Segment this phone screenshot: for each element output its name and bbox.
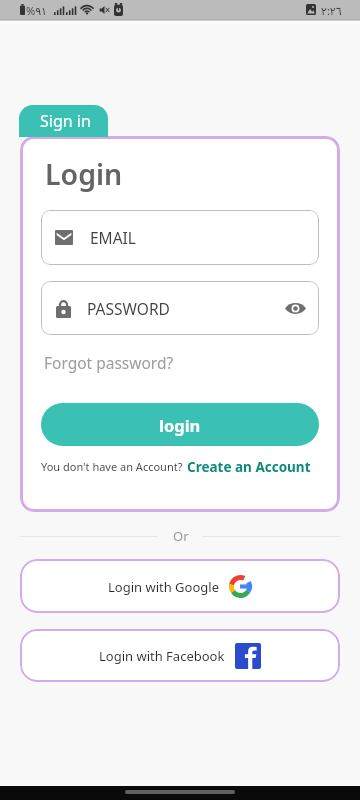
button[interactable]: Show password	[282, 295, 308, 321]
staticText: Login with Facebook	[99, 647, 225, 665]
button[interactable]: Forgot password?	[44, 352, 174, 373]
button[interactable]: Login with Facebook	[20, 629, 340, 682]
staticText: Or	[173, 527, 189, 545]
staticText: PASSWORD	[87, 298, 170, 319]
button[interactable]: Sign in	[19, 105, 108, 137]
staticText: Login with Google	[108, 578, 219, 596]
staticText: Sign in	[40, 110, 91, 132]
button[interactable]: EMAIL	[41, 210, 319, 265]
staticText: EMAIL	[90, 227, 136, 248]
staticText: login	[159, 414, 201, 436]
button[interactable]: login	[41, 403, 319, 446]
button[interactable]: Login with Google	[20, 559, 340, 613]
staticText: %٩١	[26, 3, 47, 18]
button[interactable]: Create an Account	[187, 458, 311, 476]
staticText: You don't have an Account?	[41, 459, 183, 474]
staticText: ٢:٢٦	[321, 3, 342, 18]
button[interactable]: PASSWORD	[41, 281, 319, 335]
staticText: Login	[45, 155, 123, 194]
